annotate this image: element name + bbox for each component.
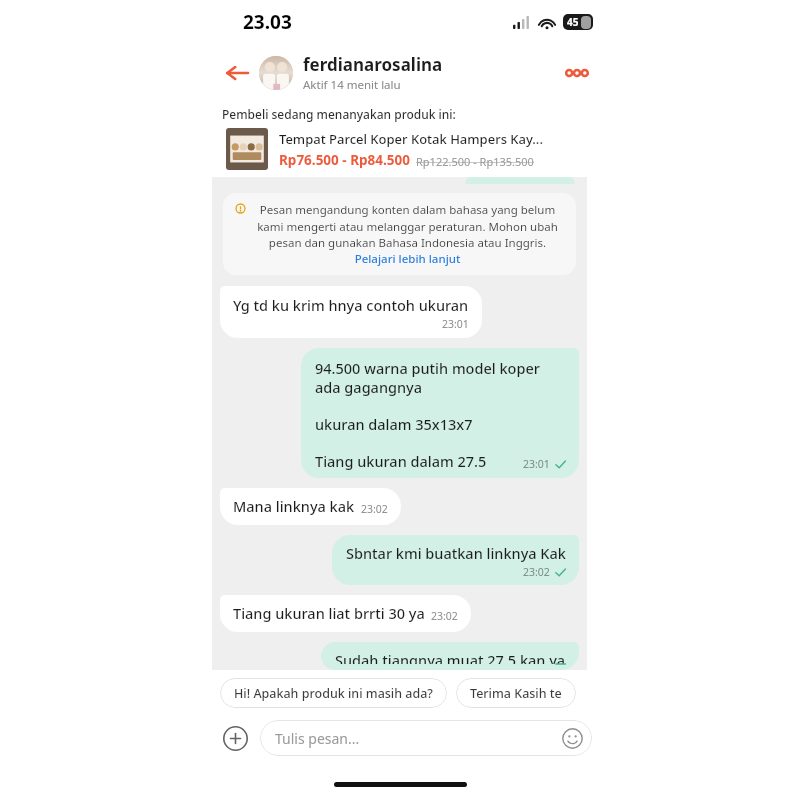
staticText: ferdianarosalina bbox=[303, 53, 443, 76]
staticText: 23:01 bbox=[523, 457, 550, 471]
button[interactable]: Back bbox=[222, 58, 252, 88]
button[interactable]: Hi! Apakah produk ini masih ada? bbox=[220, 678, 447, 708]
staticText: Hi! Apakah produk ini masih ada? bbox=[234, 685, 433, 702]
staticText: Mana linknya kak bbox=[233, 496, 355, 516]
staticText: Tempat Parcel Koper Kotak Hampers Kay... bbox=[279, 130, 543, 148]
staticText: 23:02 bbox=[431, 609, 458, 623]
staticText: ukuran dalam 35x13x7 bbox=[315, 414, 473, 434]
staticText: 23.03 bbox=[243, 9, 292, 35]
staticText: 23:01 bbox=[442, 317, 469, 331]
staticText: 23:02 bbox=[361, 502, 388, 516]
staticText: Tulis pesan... bbox=[275, 729, 561, 748]
staticText: 45 bbox=[567, 15, 579, 29]
button[interactable]: Sbntar kmi buatkan linknya Kak bbox=[332, 535, 579, 585]
staticText: Terima Kasih te bbox=[470, 685, 562, 702]
button[interactable]: Mana linknya kak bbox=[220, 488, 401, 525]
other: Emoji bbox=[561, 727, 583, 749]
button[interactable]: Add attachment bbox=[220, 723, 250, 753]
staticText: 94.500 warna putih model koper ada gagan… bbox=[315, 358, 566, 397]
staticText: Aktif 14 menit lalu bbox=[303, 77, 401, 93]
staticText: Yg td ku krim hnya contoh ukuran bbox=[233, 295, 469, 315]
button[interactable]: 94.500 warna putih model koper ada gagan… bbox=[301, 348, 579, 478]
staticText: 23:02 bbox=[523, 565, 550, 579]
button[interactable]: Tulis pesan... bbox=[260, 720, 592, 756]
staticText: Pembeli sedang menanyakan produk ini: bbox=[222, 106, 456, 122]
button[interactable]: More options bbox=[559, 58, 595, 88]
staticText: Tiang ukuran liat brrti 30 ya bbox=[233, 603, 425, 623]
button[interactable]: Terima Kasih te bbox=[456, 678, 576, 708]
staticText: Tiang ukuran dalam 27.5 bbox=[315, 451, 487, 471]
staticText: Pesan mengandung konten dalam bahasa yan… bbox=[251, 202, 564, 266]
button[interactable]: Yg td ku krim hnya contoh ukuran bbox=[220, 286, 482, 338]
staticText: Sudah tiangnya muat 27.5 kan ya bbox=[335, 650, 566, 664]
staticText: Sbntar kmi buatkan linknya Kak bbox=[346, 543, 566, 563]
staticText: Rp76.500 - Rp84.500 bbox=[279, 151, 410, 169]
button[interactable]: Tempat Parcel Koper Kotak Hampers Kay... bbox=[226, 128, 595, 170]
staticText: Rp122.500 - Rp135.500 bbox=[416, 154, 534, 169]
button[interactable]: Tiang ukuran liat brrti 30 ya bbox=[220, 595, 471, 632]
button[interactable]: Sudah tiangnya muat 27.5 kan ya bbox=[321, 642, 579, 670]
